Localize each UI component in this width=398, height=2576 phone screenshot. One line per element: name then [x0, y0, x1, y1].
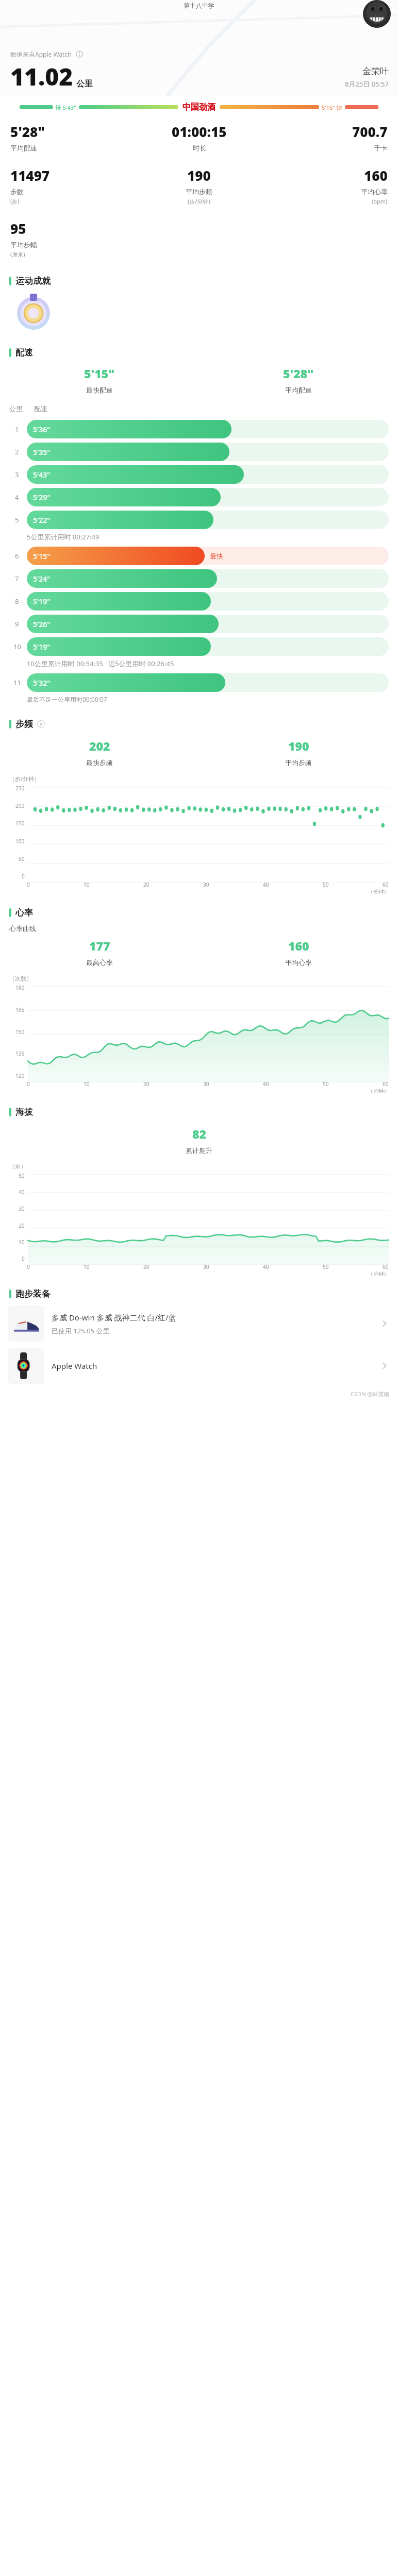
staticText: 20 — [19, 1222, 25, 1229]
button[interactable]: 2 — [9, 443, 389, 461]
staticText: 心率曲线 — [9, 924, 36, 933]
button[interactable]: Achievement medal — [15, 294, 52, 330]
staticText: 20 — [143, 1080, 150, 1088]
staticText: 0 — [27, 1263, 30, 1270]
staticText: ? — [40, 721, 42, 727]
staticText: 10 — [19, 1239, 25, 1246]
staticText: 5'15" — [84, 365, 115, 381]
staticText: 120 — [15, 1072, 25, 1079]
staticText: 60 — [383, 1263, 389, 1270]
staticText: 平均步频 — [186, 188, 212, 196]
staticText: 177 — [89, 938, 110, 954]
button[interactable]: 5 — [9, 511, 389, 529]
button[interactable]: 10 — [9, 637, 389, 656]
staticText: 第十八中学 — [184, 2, 214, 9]
staticText: 11497 — [10, 166, 50, 184]
staticText: 7 — [15, 574, 19, 583]
staticText: 11 — [13, 678, 21, 687]
staticText: 700.7 — [352, 123, 388, 141]
button[interactable]: 8 — [9, 592, 389, 611]
button[interactable]: 4 — [9, 488, 389, 506]
button[interactable]: 9 — [9, 615, 389, 633]
staticText: 金荣叶 — [362, 66, 389, 77]
staticText: 累计爬升 — [186, 1146, 212, 1155]
staticText: 50 — [323, 881, 329, 888]
staticText: 95 — [10, 219, 26, 238]
staticText: 平均步幅 — [10, 241, 37, 249]
staticText: 0 — [22, 1255, 25, 1262]
button[interactable]: 3 — [9, 465, 389, 484]
button[interactable]: Info — [76, 50, 83, 58]
button[interactable]: 多威 Do-win 多威 战神二代 白/红/蓝 — [8, 1306, 390, 1342]
staticText: 公里 — [9, 404, 23, 413]
button[interactable]: Help — [37, 720, 45, 728]
staticText: （米） — [9, 1163, 26, 1170]
staticText: 5'19" — [33, 642, 51, 652]
staticText: 40 — [263, 881, 269, 888]
staticText: 数据来自Apple Watch — [10, 50, 72, 58]
staticText: 30 — [203, 881, 209, 888]
staticText: 时长 — [193, 144, 206, 152]
staticText: 5'43" — [33, 470, 51, 480]
staticText: Apple Watch — [52, 1361, 97, 1371]
staticText: 最快配速 — [86, 386, 113, 394]
staticText: 平均配速 — [285, 386, 312, 394]
staticText: 平均心率 — [285, 958, 312, 967]
staticText: 跑步装备 — [15, 1289, 51, 1299]
staticText: 9 — [15, 619, 19, 629]
button[interactable]: Apple Watch — [8, 1348, 390, 1384]
staticText: 30 — [19, 1205, 25, 1212]
staticText: 5'28" — [283, 365, 314, 381]
staticText: 0 — [27, 1080, 30, 1088]
staticText: (步) — [10, 197, 20, 205]
staticText: 5'36" — [33, 425, 51, 434]
staticText: 30 — [203, 1080, 209, 1088]
staticText: 10公里累计用时 00:54:35 近5公里用时 00:26:45 — [27, 659, 174, 668]
staticText: 50 — [323, 1080, 329, 1088]
button[interactable]: 7 — [9, 569, 389, 588]
staticText: 50 — [323, 1263, 329, 1270]
staticText: 5'22" — [33, 515, 51, 525]
staticText: 10 — [84, 1263, 90, 1270]
staticText: 150 — [15, 1028, 25, 1036]
other: Open details — [379, 1361, 390, 1371]
other: Open details — [379, 1318, 390, 1329]
staticText: 8 — [15, 597, 19, 606]
staticText: 配速 — [34, 404, 47, 413]
staticText: 6 — [15, 551, 19, 561]
staticText: 最快 — [210, 552, 223, 560]
staticText: (步/分钟) — [188, 197, 210, 205]
staticText: 0 — [27, 881, 30, 888]
staticText: 40 — [263, 1263, 269, 1270]
staticText: 190 — [288, 738, 309, 754]
staticText: 多威 Do-win 多威 战神二代 白/红/蓝 — [52, 1312, 176, 1323]
staticText: 20 — [143, 881, 150, 888]
staticText: 190 — [187, 166, 211, 184]
button[interactable]: 6 — [9, 547, 389, 565]
staticText: 1 — [15, 425, 19, 434]
staticText: 5'15" 快 — [322, 104, 342, 111]
button[interactable]: 11 — [9, 673, 389, 692]
staticText: 平均心率 — [361, 188, 388, 196]
staticText: 8月25日 05:57 — [345, 79, 389, 89]
staticText: 5'29" — [33, 493, 51, 502]
staticText: 5'19" — [33, 597, 51, 606]
staticText: 心率 — [15, 907, 33, 918]
button[interactable]: 1 — [9, 420, 389, 438]
staticText: 0 — [22, 873, 25, 880]
staticText: 100 — [15, 838, 25, 845]
staticText: 最快步频 — [86, 758, 113, 767]
staticText: 10 — [84, 1080, 90, 1088]
staticText: 82 — [192, 1126, 206, 1142]
staticText: (bpm) — [372, 197, 388, 205]
staticText: 平均步频 — [285, 758, 312, 767]
staticText: 150 — [15, 820, 25, 827]
staticText: CSDN @林震南 — [351, 1390, 390, 1398]
staticText: 60 — [383, 1080, 389, 1088]
staticText: 最高心率 — [86, 958, 113, 967]
button[interactable]: Profile avatar — [363, 0, 391, 28]
staticText: 5'24" — [33, 574, 51, 584]
staticText: 10 — [13, 642, 21, 651]
staticText: 165 — [15, 1006, 25, 1013]
staticText: 步频 — [15, 719, 33, 730]
